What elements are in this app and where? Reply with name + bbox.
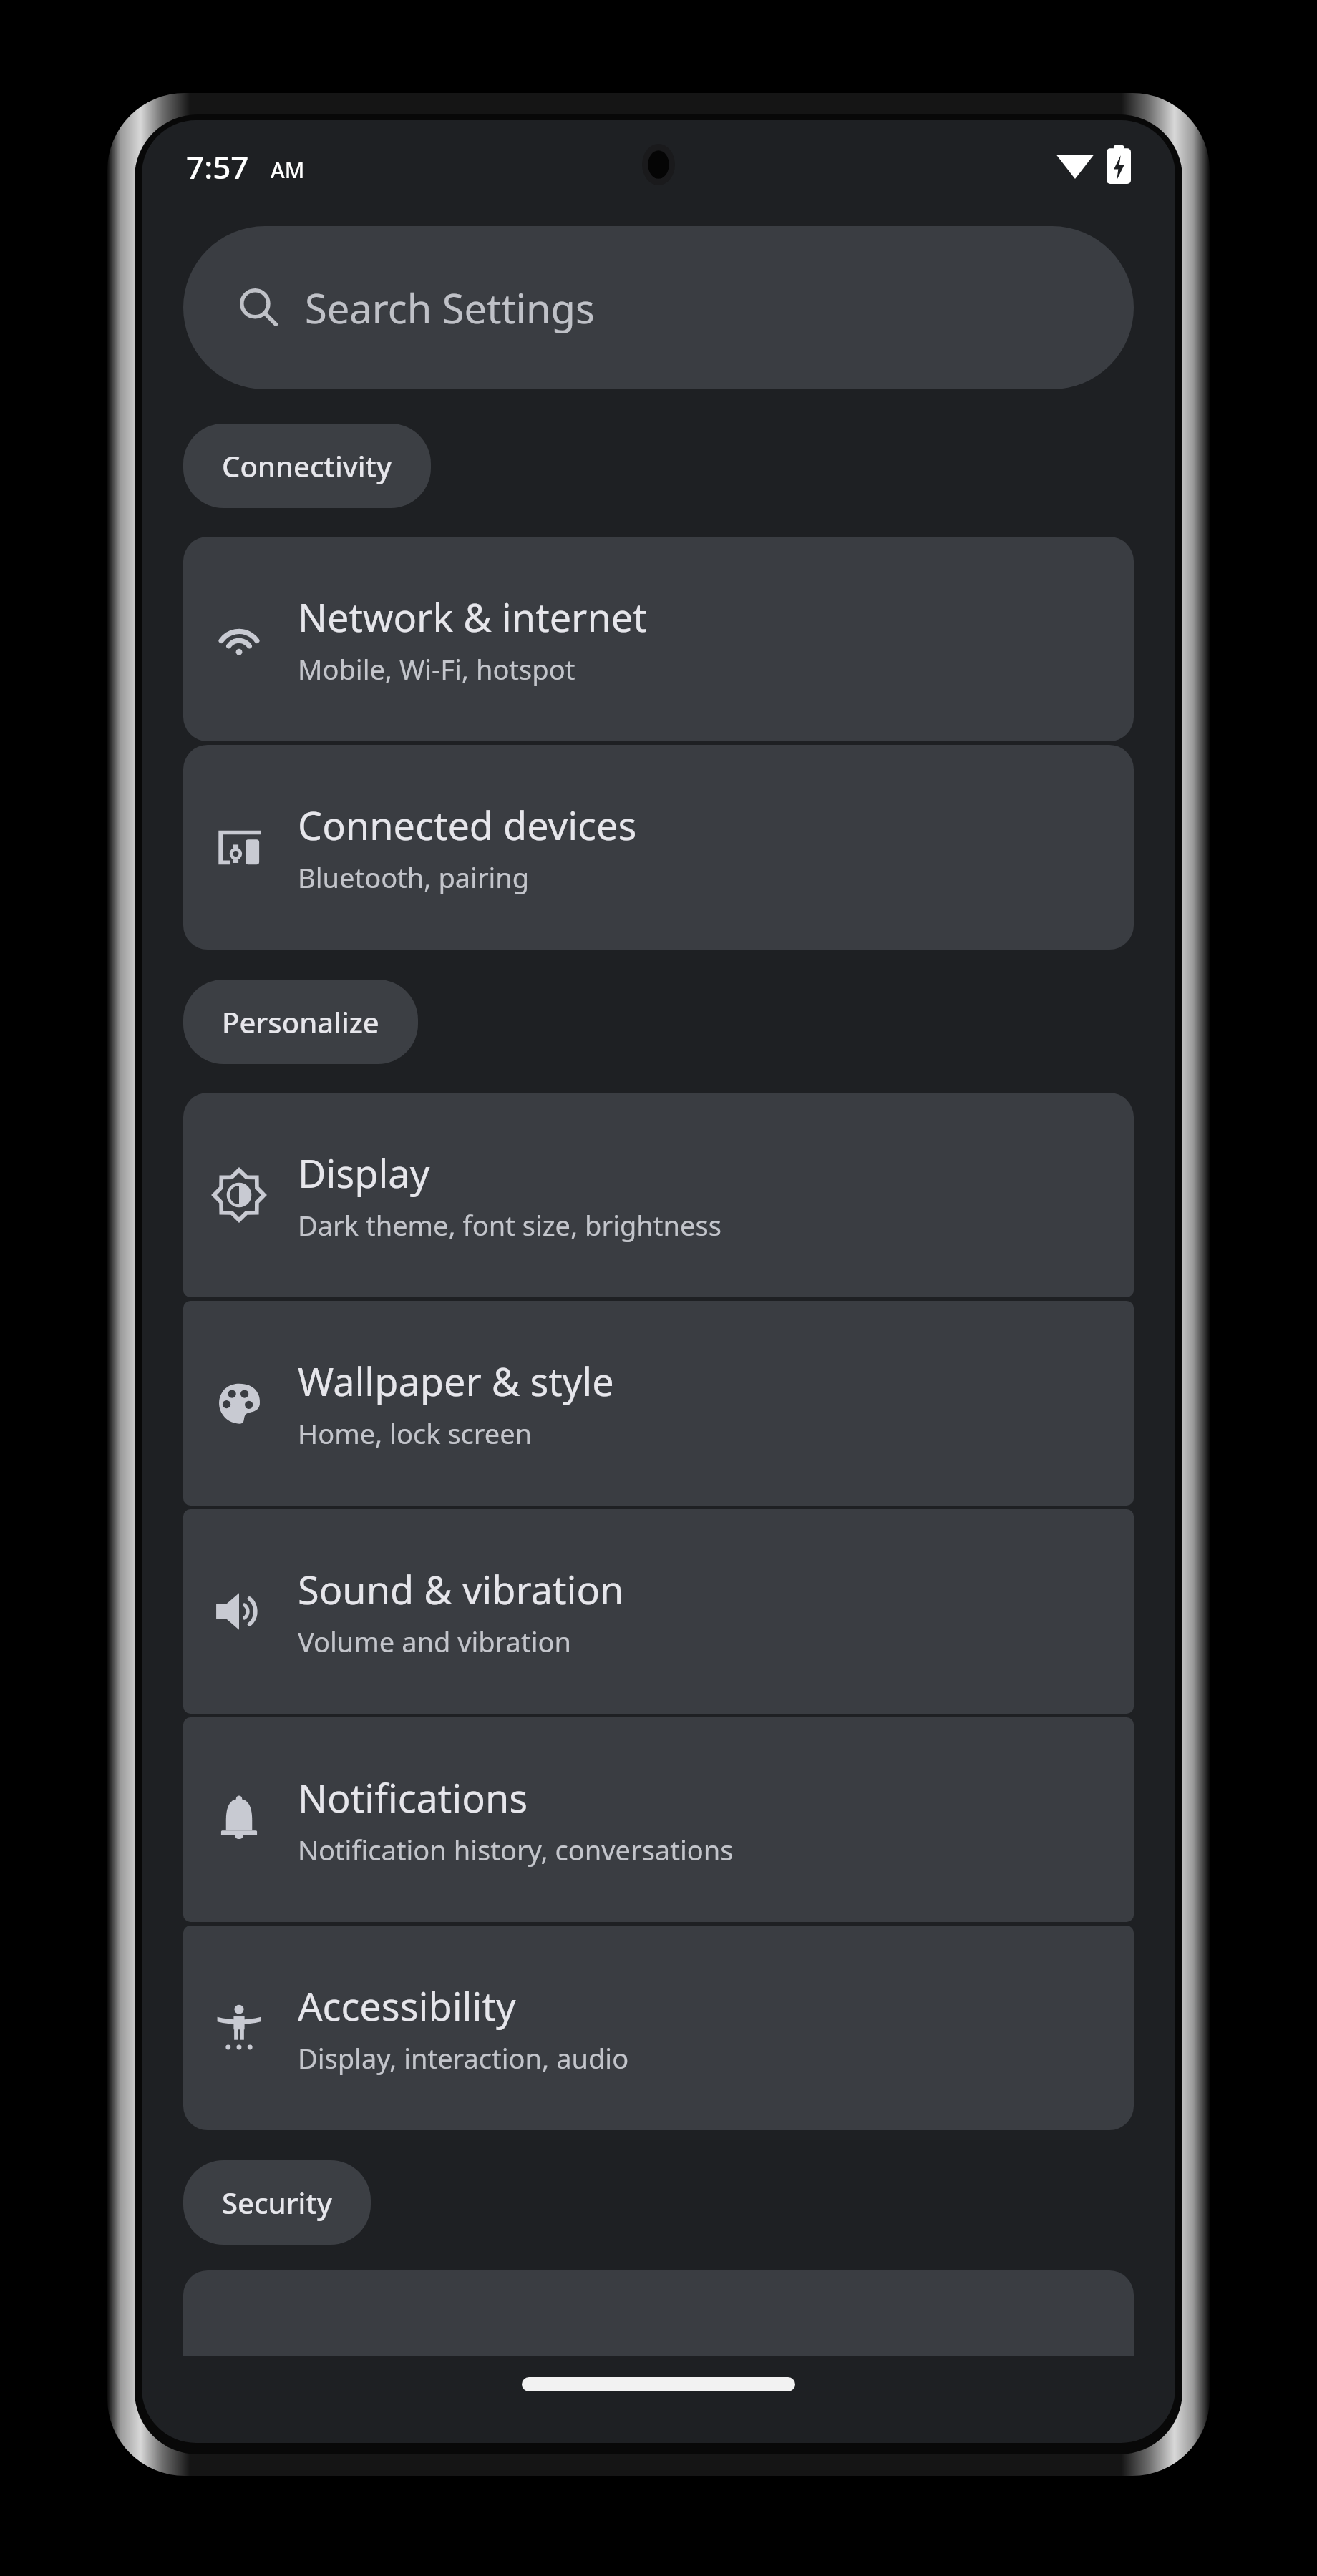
button[interactable]: Wallpaper & style	[183, 1301, 1134, 1506]
button[interactable]: Notifications	[183, 1717, 1134, 1922]
staticText: Volume and vibration	[298, 1623, 571, 1660]
staticText: AM	[271, 155, 305, 185]
button[interactable]: Search Settings	[183, 226, 1134, 389]
staticText: Network & internet	[298, 590, 647, 643]
staticText: Sound & vibration	[298, 1563, 624, 1616]
staticText: Security	[222, 2183, 332, 2222]
button[interactable]	[183, 2270, 1134, 2356]
staticText: Notifications	[298, 1771, 528, 1824]
staticText: Wallpaper & style	[298, 1355, 614, 1407]
staticText: Dark theme, font size, brightness	[298, 1206, 721, 1244]
button[interactable]: Personalize	[183, 980, 418, 1064]
staticText: Display	[298, 1146, 430, 1199]
staticText: 7:57	[186, 145, 249, 188]
staticText: Notification history, conversations	[298, 1831, 734, 1868]
staticText: Home, lock screen	[298, 1415, 533, 1452]
staticText: Display, interaction, audio	[298, 2039, 629, 2077]
staticText: Bluetooth, pairing	[298, 859, 530, 896]
staticText: Search Settings	[305, 280, 595, 335]
button[interactable]: Accessibility	[183, 1926, 1134, 2130]
button[interactable]: Display	[183, 1093, 1134, 1297]
staticText: Connected devices	[298, 799, 637, 852]
button[interactable]: Connectivity	[183, 424, 431, 508]
button[interactable]: Sound & vibration	[183, 1509, 1134, 1714]
staticText: Personalize	[222, 1002, 379, 1041]
button[interactable]: Security	[183, 2160, 371, 2245]
button[interactable]: Network & internet	[183, 537, 1134, 741]
button[interactable]: Connected devices	[183, 745, 1134, 950]
staticText: Mobile, Wi-Fi, hotspot	[298, 650, 575, 688]
staticText: Accessibility	[298, 1979, 516, 2032]
staticText: Connectivity	[222, 447, 392, 485]
